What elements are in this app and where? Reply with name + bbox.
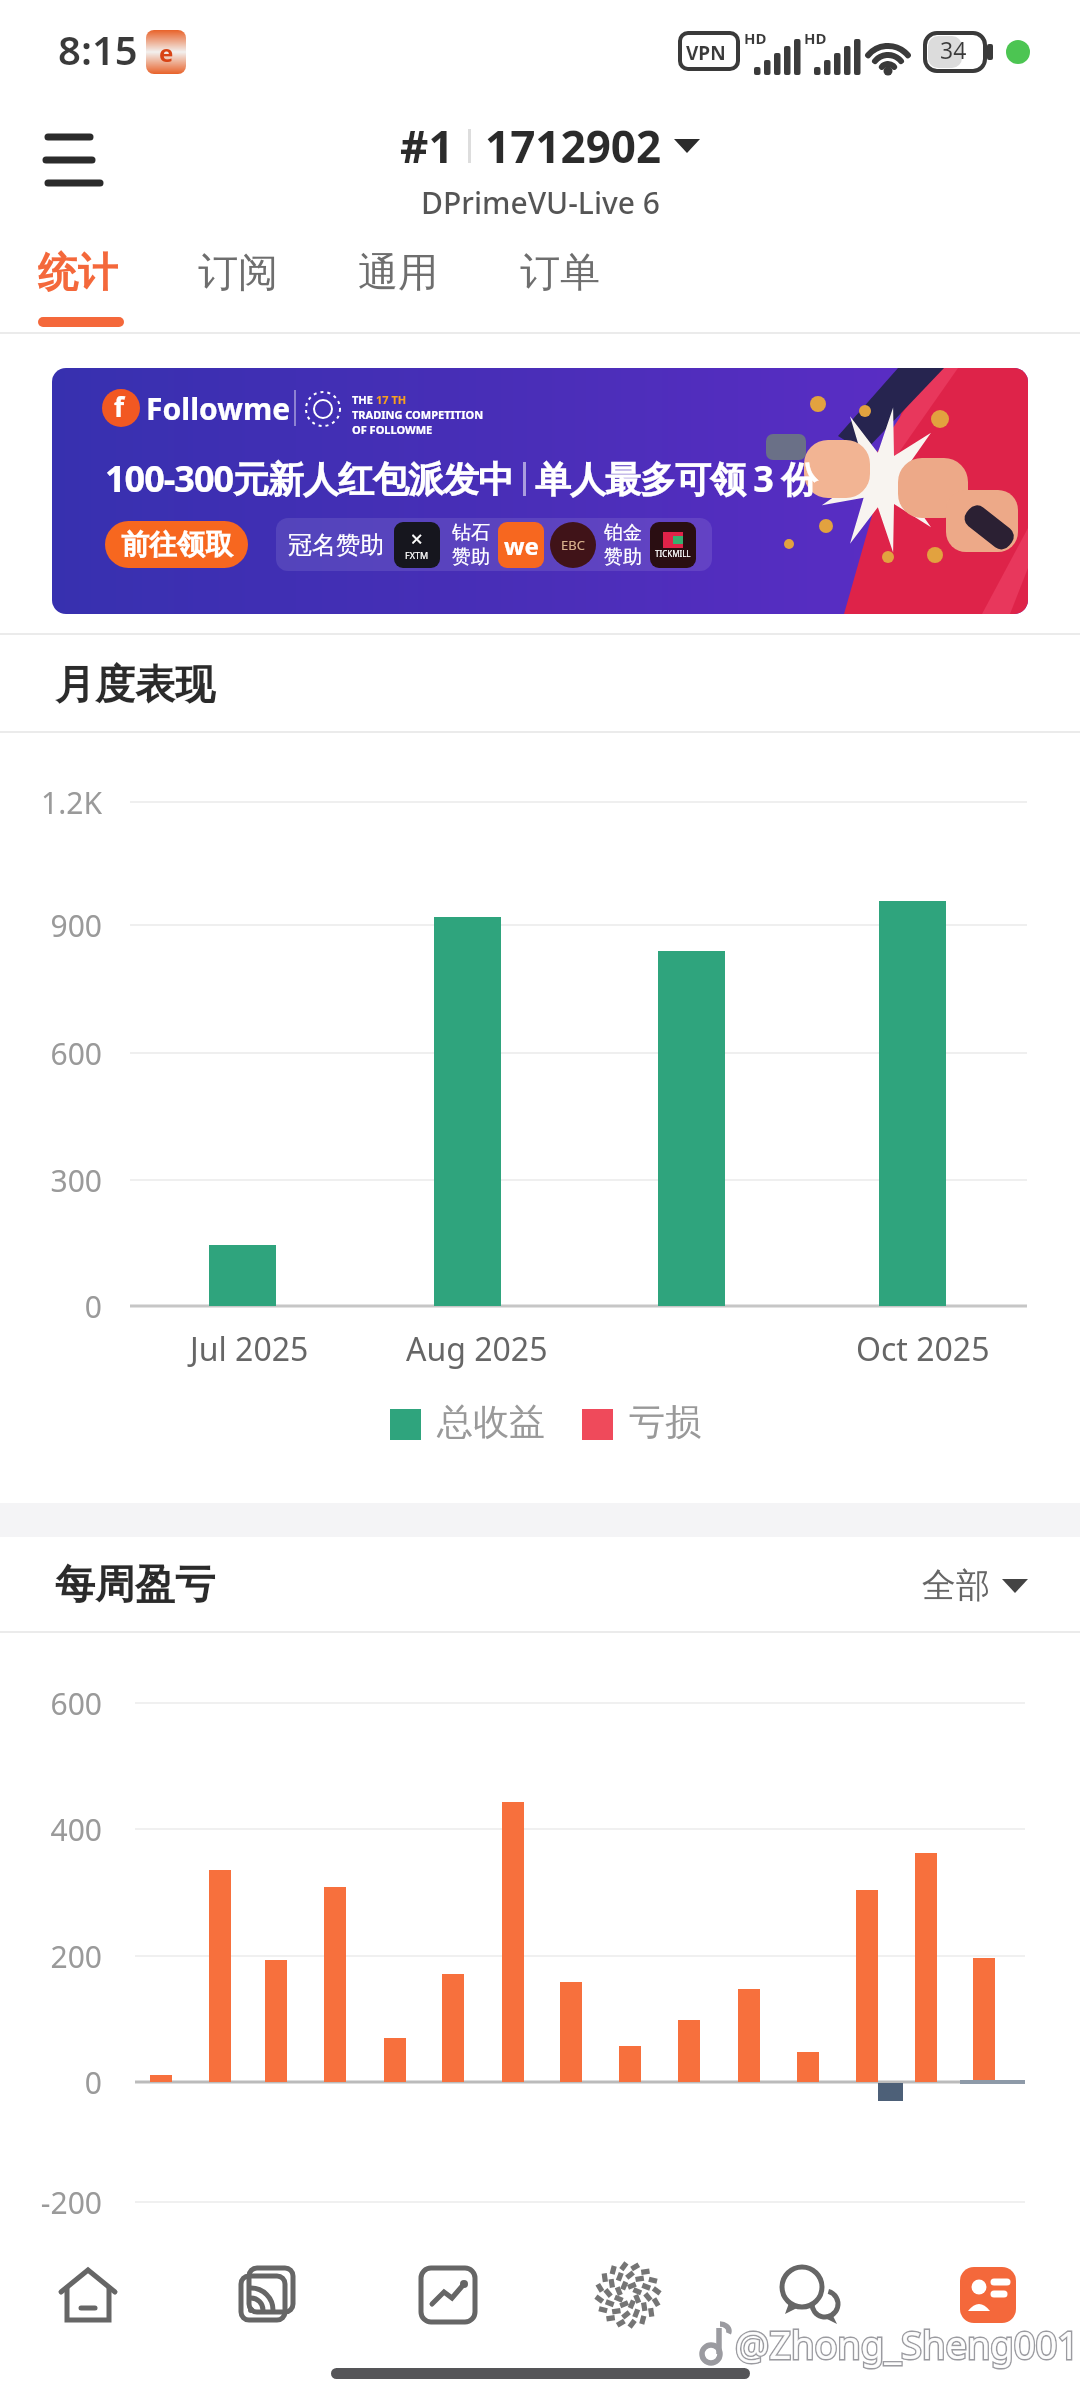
button[interactable]: 订阅: [198, 247, 278, 297]
button[interactable]: [583, 2250, 673, 2340]
staticText: 亏损: [629, 1399, 701, 1444]
button[interactable]: [45, 132, 103, 190]
staticText: ✕: [410, 530, 424, 549]
staticText: 900: [20, 905, 102, 946]
staticText: VPN: [686, 40, 726, 66]
staticText: 赞助: [452, 545, 490, 569]
button[interactable]: 订单: [520, 247, 600, 297]
staticText: 钻石: [452, 521, 490, 545]
staticText: 1712902: [485, 116, 662, 176]
staticText: 8:15: [58, 22, 138, 76]
staticText: @Zhong_Sheng001: [735, 2318, 1079, 2370]
staticText: 1.2K: [20, 782, 102, 823]
staticText: 全部: [922, 1564, 990, 1607]
staticText: 前往领取: [121, 527, 233, 562]
staticText: HD: [744, 28, 767, 48]
staticText: 月度表现: [55, 659, 215, 709]
button[interactable]: 统计: [38, 247, 118, 297]
staticText: e: [159, 36, 174, 69]
staticText: Jul 2025: [190, 1327, 309, 1371]
staticText: THE: [352, 392, 376, 407]
staticText: OF FOLLOWME: [352, 422, 433, 437]
staticText: 600: [20, 1683, 102, 1724]
staticText: 单人最多可领 3 份: [535, 454, 817, 503]
staticText: 400: [20, 1809, 102, 1850]
button[interactable]: f: [52, 368, 1028, 614]
staticText: 冠名赞助: [288, 530, 384, 560]
staticText: Oct 2025: [856, 1327, 990, 1371]
staticText: 17 TH: [376, 392, 407, 407]
staticText: 0: [20, 1286, 102, 1327]
staticText: DPrimeVU-Live 6: [421, 182, 660, 223]
staticText: 34: [940, 34, 967, 65]
staticText: TRADING COMPETITION: [352, 407, 484, 422]
staticText: we: [504, 529, 539, 562]
staticText: EBC: [561, 536, 585, 554]
staticText: 0: [20, 2062, 102, 2103]
staticText: Aug 2025: [406, 1327, 548, 1371]
staticText: 300: [20, 1160, 102, 1201]
button[interactable]: [223, 2250, 313, 2340]
staticText: HD: [804, 28, 827, 48]
staticText: Followme: [146, 388, 291, 429]
staticText: 100-300元新人红包派发中: [105, 454, 514, 503]
button[interactable]: [403, 2250, 493, 2340]
button[interactable]: #1: [400, 116, 700, 176]
staticText: 600: [20, 1033, 102, 1074]
button[interactable]: 全部: [922, 1564, 1028, 1607]
staticText: 铂金: [604, 521, 642, 545]
staticText: f: [114, 389, 125, 424]
button[interactable]: [43, 2250, 133, 2340]
staticText: TICKMILL: [655, 548, 691, 559]
staticText: 总收益: [437, 1399, 545, 1444]
staticText: 赞助: [604, 545, 642, 569]
staticText: #1: [400, 116, 454, 176]
staticText: 每周盈亏: [55, 1559, 215, 1609]
staticText: @Zhong_Sheng001: [735, 2318, 1079, 2370]
staticText: FXTM: [405, 549, 429, 561]
staticText: 200: [20, 1936, 102, 1977]
button[interactable]: 通用: [358, 247, 438, 297]
staticText: -200: [20, 2182, 102, 2223]
button[interactable]: [943, 2250, 1033, 2340]
button[interactable]: 前往领取: [105, 521, 248, 568]
button[interactable]: [765, 2250, 855, 2340]
